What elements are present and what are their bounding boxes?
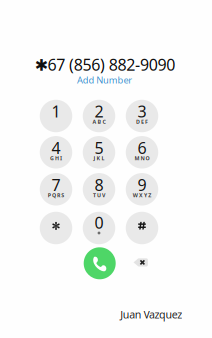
staticText: R — [57, 192, 60, 199]
staticText: 8 — [94, 174, 103, 195]
staticText: C — [103, 118, 106, 125]
staticText: K — [96, 155, 100, 162]
button[interactable]: 5 — [83, 136, 115, 169]
button[interactable]: 4 — [40, 136, 72, 169]
staticText: X — [139, 192, 143, 199]
button[interactable]: Add Number — [73, 72, 136, 88]
staticText: G — [50, 155, 54, 162]
staticText: 4 — [51, 137, 60, 158]
staticText: U — [97, 192, 101, 199]
staticText: J — [93, 155, 95, 162]
staticText: E — [141, 118, 144, 125]
staticText: V — [102, 192, 105, 199]
staticText: T — [93, 192, 96, 199]
staticText: L — [102, 155, 105, 162]
staticText: S — [61, 192, 64, 199]
staticText: 3 — [137, 101, 146, 122]
staticText: 9 — [137, 174, 146, 195]
staticText: 1 — [51, 101, 60, 122]
staticText: I — [60, 155, 62, 162]
button[interactable]: 6 — [126, 136, 158, 169]
staticText: O — [146, 155, 150, 162]
staticText: F — [145, 118, 148, 125]
button[interactable]: 8 — [83, 173, 115, 206]
staticText: Q — [52, 192, 56, 199]
staticText: Y — [144, 192, 147, 199]
staticText: A — [92, 118, 96, 125]
staticText: Z — [148, 192, 151, 199]
staticText: 6 — [137, 137, 146, 158]
button[interactable]: Delete — [128, 251, 154, 273]
staticText: Juan Vazquez — [120, 307, 182, 321]
button[interactable]: 9 — [126, 173, 158, 206]
staticText: 2 — [94, 101, 103, 122]
staticText: H — [55, 155, 59, 162]
button[interactable]: 3 — [126, 100, 158, 132]
staticText: W — [133, 192, 138, 199]
button[interactable]: Call — [84, 247, 116, 279]
staticText: ✱67 (856) 882-9090 — [35, 54, 175, 75]
button[interactable]: 2 — [83, 100, 115, 132]
staticText: M — [134, 155, 139, 162]
button[interactable]: 1 — [40, 100, 72, 132]
staticText: B — [97, 118, 101, 125]
staticText: N — [140, 155, 144, 162]
staticText: 5 — [94, 137, 103, 158]
staticText: 7 — [51, 174, 60, 195]
button[interactable]: 7 — [40, 173, 72, 206]
button[interactable] — [40, 212, 72, 244]
staticText: D — [136, 118, 140, 125]
button[interactable]: 0 — [83, 212, 115, 244]
staticText: P — [48, 192, 51, 199]
staticText: Add Number — [77, 74, 132, 86]
staticText: 0 — [94, 212, 103, 233]
button[interactable] — [126, 212, 158, 244]
